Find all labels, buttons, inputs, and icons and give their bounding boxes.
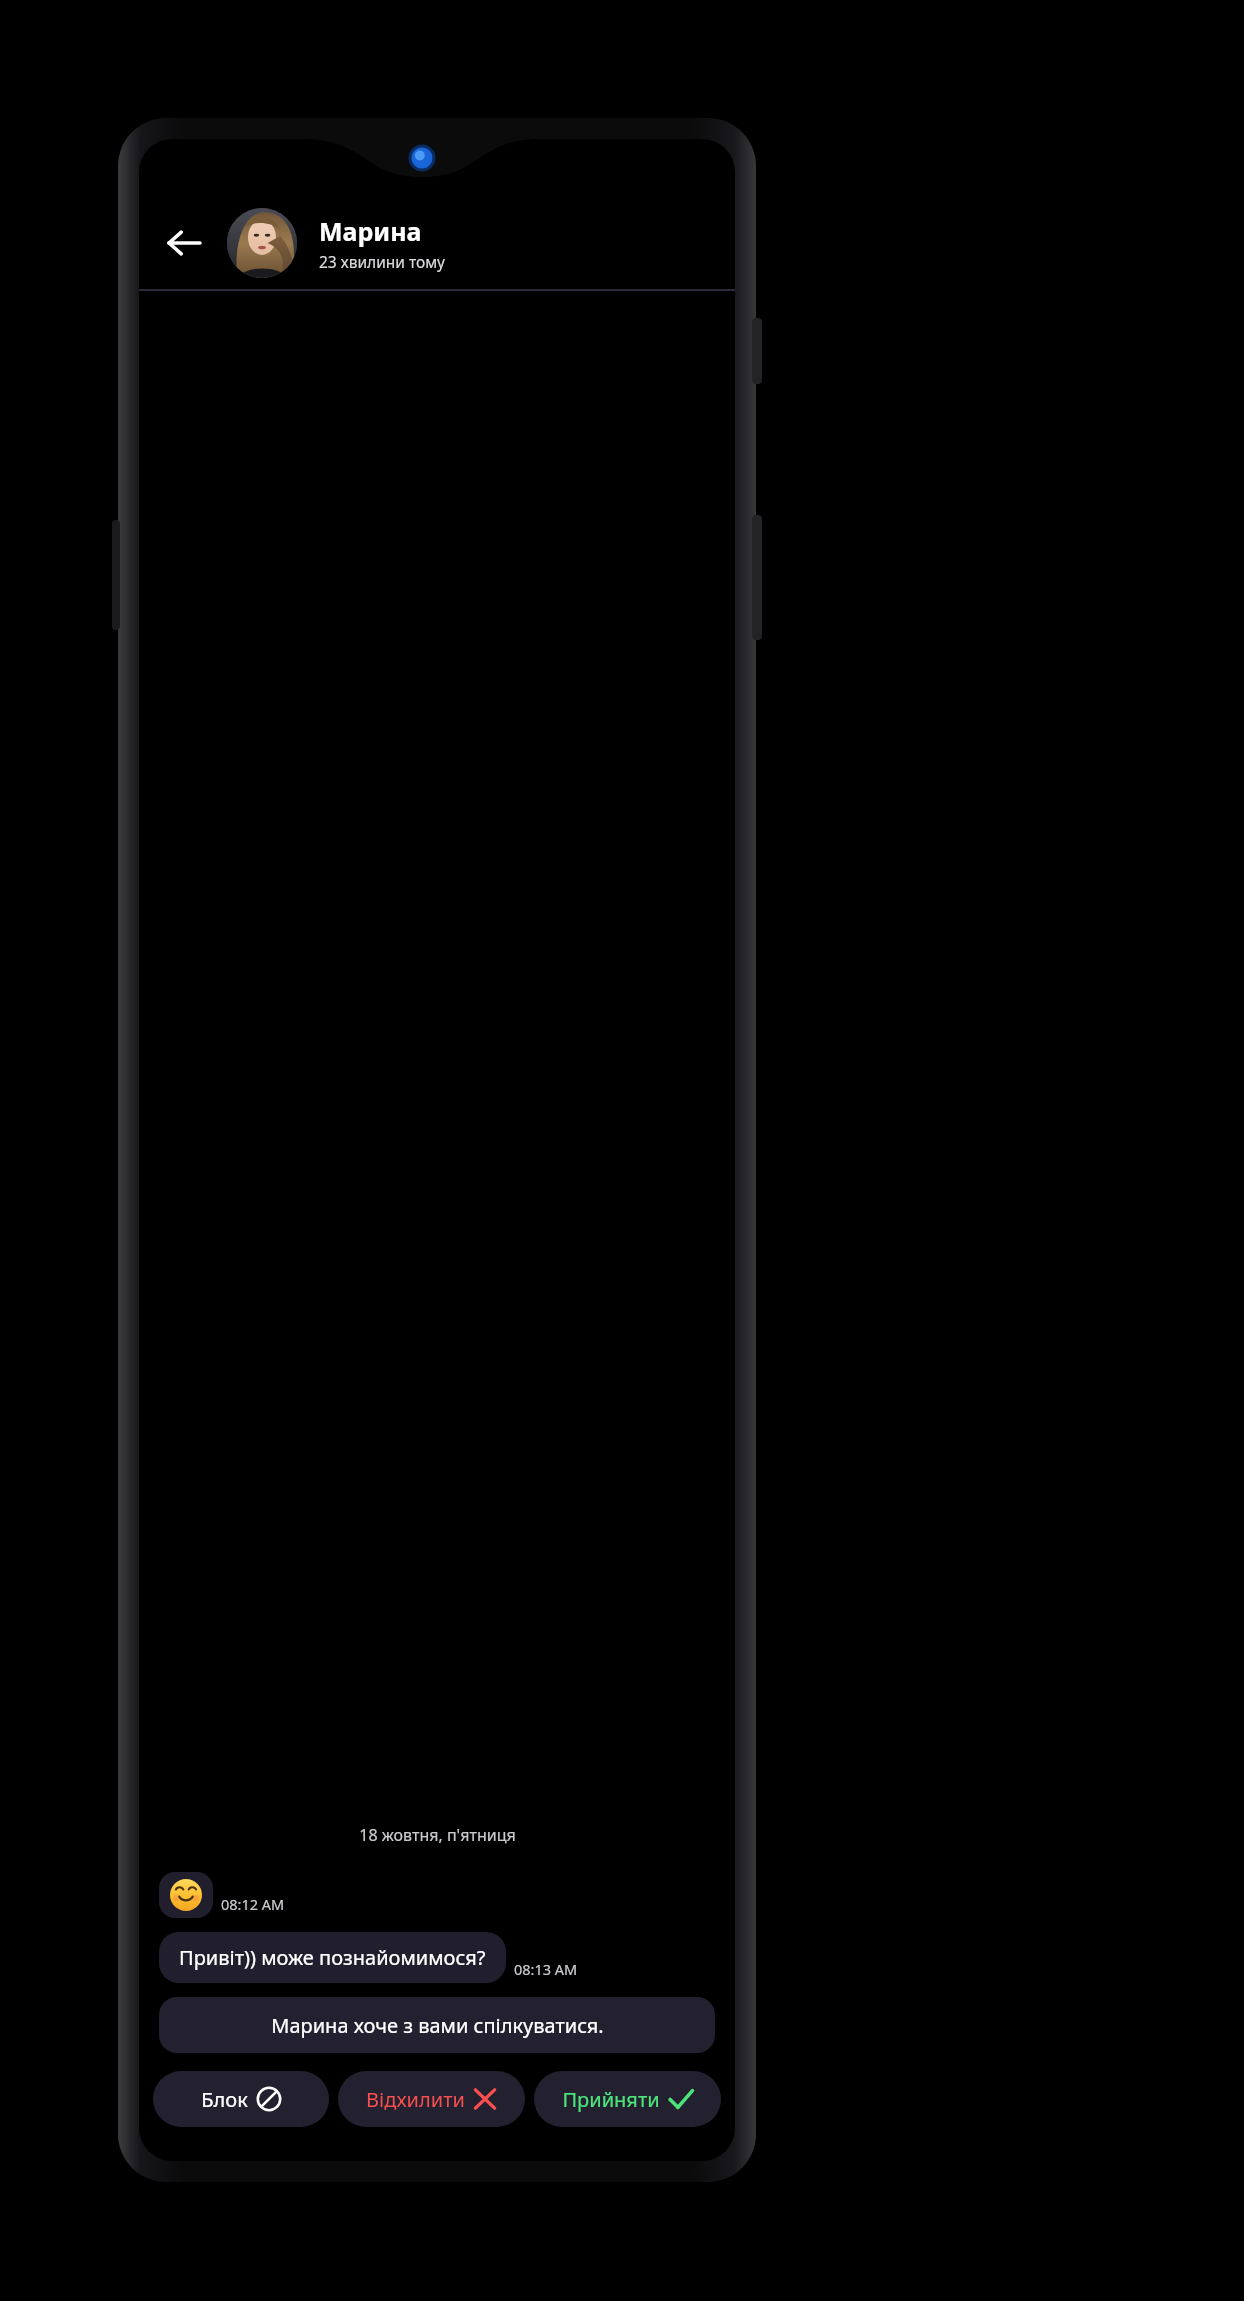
button[interactable]: Прийняти	[534, 2071, 721, 2127]
button[interactable]: Марина	[319, 214, 723, 272]
staticText: Марина	[319, 214, 422, 248]
staticText: Відхилити	[366, 2086, 465, 2113]
staticText: 18 жовтня, п'ятниця	[359, 1824, 516, 1846]
button[interactable]	[159, 1872, 213, 1918]
staticText: 08:12 AM	[221, 1894, 285, 1914]
button[interactable]: Відхилити	[338, 2071, 525, 2127]
button[interactable]: Привіт)) може познайомимося?	[159, 1932, 506, 1983]
staticText: 23 хвилини тому	[319, 251, 446, 272]
staticText: Марина хоче з вами спілкуватися.	[271, 2012, 604, 2039]
staticText: 08:13 AM	[514, 1959, 578, 1979]
staticText: Прийняти	[562, 2086, 660, 2113]
staticText: Привіт)) може познайомимося?	[179, 1944, 486, 1971]
staticText: Блок	[201, 2086, 248, 2113]
button[interactable]: Back	[153, 212, 215, 274]
button[interactable]: Блок	[153, 2071, 329, 2127]
button[interactable]: Profile photo	[227, 208, 297, 278]
button[interactable]: Марина хоче з вами спілкуватися.	[159, 1997, 715, 2053]
